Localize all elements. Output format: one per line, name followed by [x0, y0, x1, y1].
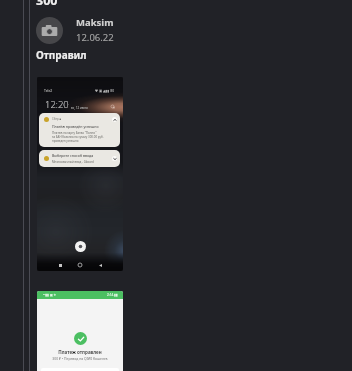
staticText: вс, 12 июня: [71, 106, 88, 110]
button[interactable]: Tele2: [37, 77, 123, 271]
staticText: 300: [36, 0, 58, 9]
button[interactable]: ••▮▮ ▣ ✦: [37, 291, 123, 371]
staticText: Платёж проведён успешно: [52, 124, 99, 129]
staticText: 12.06.22: [76, 31, 114, 44]
staticText: 2:14 ▮▮: [107, 293, 118, 297]
staticText: 300 ₽ • Перевод на QIWI Кошелек: [37, 356, 123, 361]
staticText: Платеж отправлен: [37, 349, 123, 355]
staticText: 12:20: [45, 98, 69, 111]
staticText: ••▮▮ ▣ ✦: [43, 293, 57, 297]
staticText: Платеж на карту Банка "Полюс" за БАН Каз…: [52, 131, 104, 143]
staticText: Выберите способ ввода: [52, 153, 94, 158]
button[interactable]: Home: [76, 261, 84, 269]
staticText: ♥ ▣ ▲▮▮ 80: [95, 88, 115, 93]
staticText: Отправил: [36, 48, 87, 62]
staticText: Сбер ▪: [52, 117, 62, 121]
button[interactable]: Camera: [110, 104, 115, 109]
staticText: Maksim: [76, 16, 114, 29]
button[interactable]: Recents: [56, 261, 64, 269]
staticText: Tele2: [44, 88, 53, 93]
staticText: Многоязычный ввод - Gboard: [52, 160, 94, 164]
button[interactable]: Выберите способ ввода: [39, 150, 120, 167]
button[interactable]: Back: [96, 261, 104, 269]
button[interactable]: Сбер ▪: [39, 113, 120, 147]
button[interactable]: Unlock: [75, 241, 86, 252]
